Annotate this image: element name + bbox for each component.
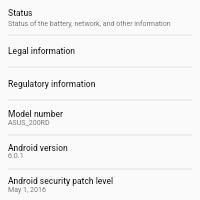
button[interactable]: Regulatory information (0, 68, 200, 101)
staticText: Android version (8, 143, 68, 153)
staticText: Model number (8, 109, 64, 119)
button[interactable]: Model number (0, 101, 200, 135)
button[interactable]: Android version (0, 135, 200, 169)
button[interactable]: Legal information (0, 35, 200, 68)
staticText: May 1, 2016 (8, 185, 46, 193)
button[interactable]: Android security patch level (0, 169, 200, 200)
staticText: Status (8, 8, 33, 18)
staticText: Status of the battery, network, and othe… (8, 19, 171, 27)
staticText: Legal information (8, 46, 76, 56)
staticText: Android security patch level (8, 176, 114, 186)
staticText: Regulatory information (8, 79, 96, 89)
staticText: 6.0.1 (8, 151, 24, 159)
staticText: ASUS_200RD (8, 118, 50, 126)
button[interactable]: Status (0, 0, 200, 35)
